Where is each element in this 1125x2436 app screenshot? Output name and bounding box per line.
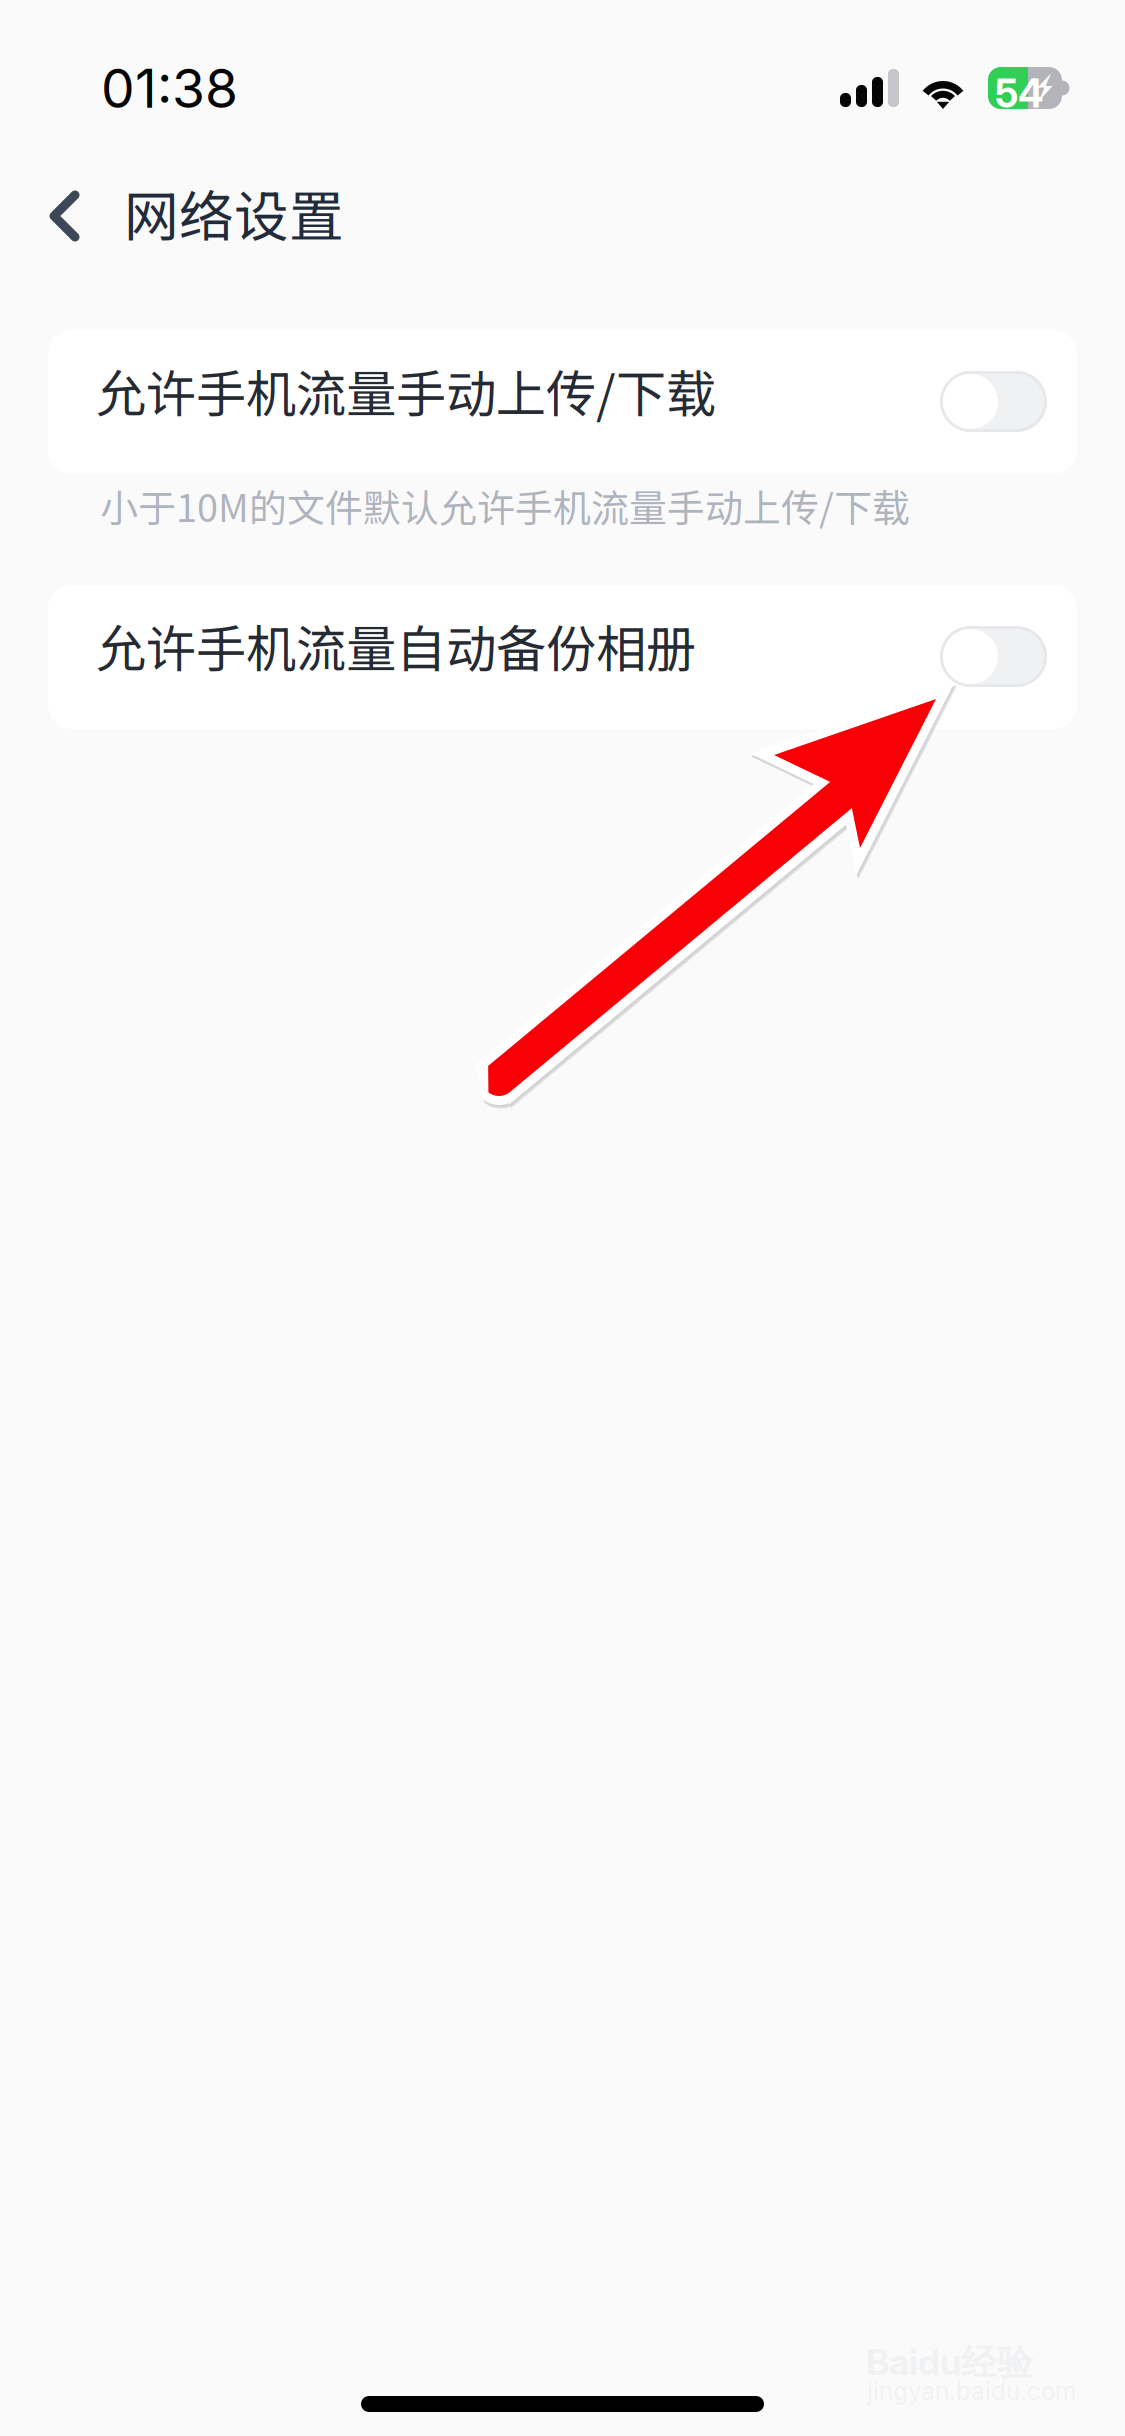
button[interactable]: 允许手机流量自动备份相册 bbox=[48, 585, 1077, 729]
staticText: 01:38 bbox=[101, 56, 238, 120]
staticText: 网络设置 bbox=[124, 173, 344, 252]
staticText: jingyan.baidu.com bbox=[867, 2376, 1076, 2406]
staticText: 54 bbox=[995, 70, 1044, 117]
staticText: 允许手机流量手动上传/下载 bbox=[96, 354, 716, 427]
button[interactable]: 返回 bbox=[0, 134, 122, 246]
staticText: 小于10M的文件默认允许手机流量手动上传/下载 bbox=[100, 478, 910, 533]
staticText: 允许手机流量自动备份相册 bbox=[96, 609, 696, 682]
button[interactable]: 允许手机流量手动上传/下载 bbox=[48, 330, 1077, 474]
staticText: Baidu经验 bbox=[866, 2340, 1033, 2386]
